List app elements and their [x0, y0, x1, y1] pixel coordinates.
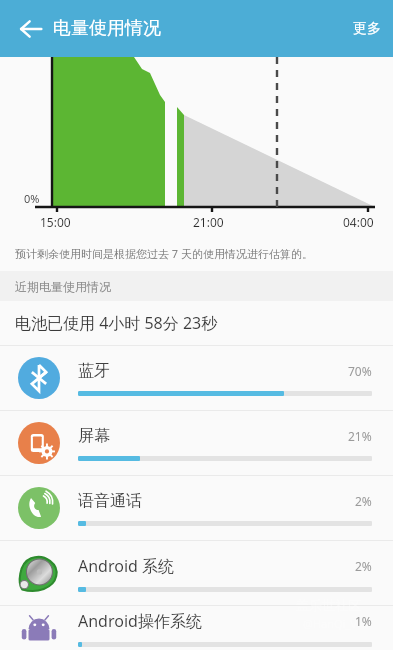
staticText: 1%: [355, 613, 372, 629]
button[interactable]: Back: [10, 8, 52, 50]
staticText: Android操作系统: [78, 610, 355, 632]
staticText: 屏幕: [78, 426, 348, 446]
other: Bluetooth: [18, 357, 60, 399]
staticText: 预计剩余使用时间是根据您过去 7 天的使用情况进行估算的。: [15, 246, 314, 261]
staticText: 电池已使用 4小时 58分 23秒: [15, 312, 218, 334]
staticText: 2%: [355, 558, 372, 574]
staticText: 0%: [24, 191, 40, 206]
other: Screen: [18, 422, 60, 464]
button[interactable]: Android OS: [0, 606, 393, 650]
button[interactable]: 更多: [341, 8, 393, 50]
button[interactable]: Voice call: [0, 476, 393, 540]
staticText: 语音通话: [78, 491, 355, 511]
other: Voice call: [18, 487, 60, 529]
staticText: 蓝牙: [78, 361, 348, 381]
staticText: 70%: [348, 363, 372, 379]
staticText: 21:00: [193, 214, 224, 230]
staticText: 电量使用情况: [53, 17, 161, 40]
staticText: 15:00: [40, 214, 71, 230]
staticText: 2%: [355, 493, 372, 509]
staticText: 更多: [353, 20, 381, 38]
staticText: 21%: [348, 428, 372, 444]
staticText: 近期电量使用情况: [15, 279, 111, 294]
staticText: 盖乐世社区: [296, 597, 361, 613]
button[interactable]: Screen: [0, 411, 393, 475]
staticText: Android 系统: [78, 555, 355, 577]
button[interactable]: Bluetooth: [0, 346, 393, 410]
other: Android OS: [18, 607, 60, 649]
other: Android system: [18, 552, 60, 594]
staticText: 04:00: [343, 214, 374, 230]
button[interactable]: Android system: [0, 541, 393, 605]
